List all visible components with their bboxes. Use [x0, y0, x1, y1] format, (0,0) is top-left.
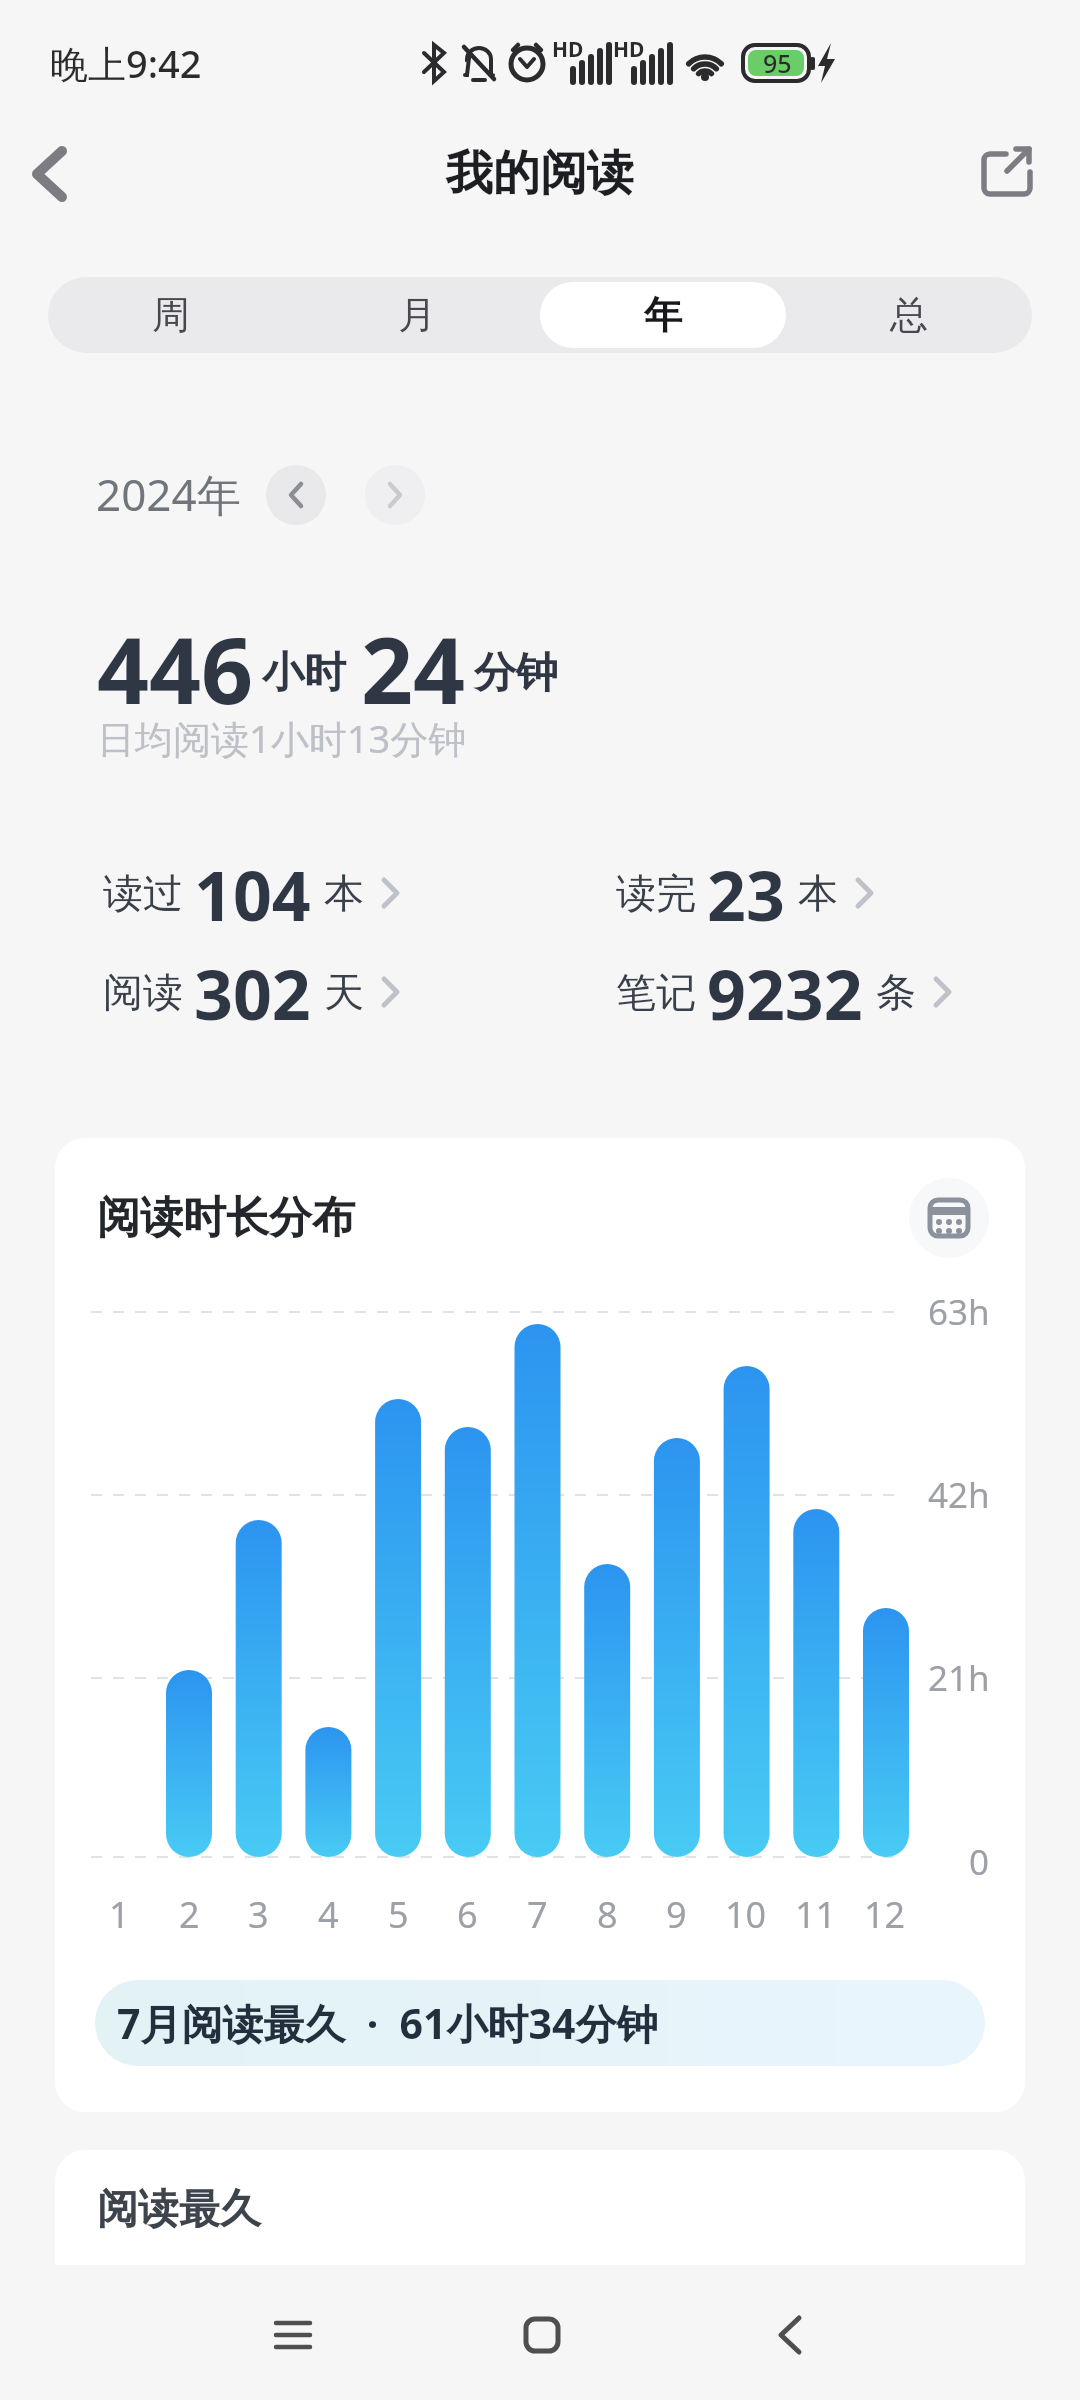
staticText: 7月阅读最久 · 61小时34分钟 [117, 1995, 658, 2051]
staticText: 条 [876, 967, 916, 1017]
button[interactable]: 总 [786, 282, 1032, 348]
staticText: 读过 [103, 868, 183, 918]
button[interactable] [254, 2295, 334, 2375]
button[interactable] [365, 465, 425, 525]
staticText: 1 [109, 1890, 130, 1939]
button[interactable] [750, 2295, 830, 2375]
staticText: 4 [318, 1890, 339, 1939]
staticText: 63h [928, 1288, 990, 1336]
staticText: 本 [324, 868, 364, 918]
staticText: 7 [527, 1890, 548, 1939]
staticText: 10 [725, 1890, 767, 1939]
staticText: 2024年 [96, 464, 241, 524]
staticText: 5 [388, 1890, 409, 1939]
button[interactable] [909, 1178, 989, 1258]
staticText: 23 [707, 848, 785, 938]
staticText: 晚上9:42 [50, 37, 202, 89]
staticText: 我的阅读 [446, 144, 634, 203]
staticText: 阅读时长分布 [97, 1191, 355, 1245]
staticText: 21h [928, 1654, 990, 1702]
button[interactable]: 7月阅读最久 · 61小时34分钟 [95, 1980, 985, 2066]
staticText: 24 [361, 607, 466, 711]
staticText: 302 [194, 947, 311, 1037]
staticText: 42h [928, 1471, 990, 1519]
staticText: 2 [179, 1890, 200, 1939]
staticText: HD [613, 35, 645, 64]
staticText: 日均阅读1小时13分钟 [97, 712, 467, 764]
button[interactable]: 年 [540, 282, 786, 348]
button[interactable]: 阅读 [103, 947, 402, 1037]
staticText: 天 [324, 967, 364, 1017]
staticText: 笔记 [616, 967, 696, 1017]
staticText: HD [552, 35, 584, 64]
button[interactable]: 周 [48, 282, 294, 348]
staticText: 446 [97, 607, 254, 711]
staticText: 月 [398, 291, 436, 339]
staticText: 周 [152, 291, 190, 339]
staticText: 6 [457, 1890, 478, 1939]
staticText: 阅读最久 [97, 2184, 261, 2236]
button[interactable] [980, 144, 1034, 200]
staticText: 9232 [707, 947, 863, 1037]
staticText: 小时 [262, 647, 346, 700]
staticText: 3 [248, 1890, 269, 1939]
button[interactable] [26, 148, 86, 202]
staticText: 104 [194, 848, 311, 938]
button[interactable]: 笔记 [616, 947, 954, 1037]
staticText: 年 [644, 291, 682, 339]
button[interactable] [266, 465, 326, 525]
staticText: 本 [798, 868, 838, 918]
button[interactable]: 读过 [103, 848, 402, 938]
staticText: 12 [864, 1890, 906, 1939]
staticText: 11 [795, 1890, 837, 1939]
button[interactable]: 月 [294, 282, 540, 348]
staticText: 8 [597, 1890, 618, 1939]
staticText: 分钟 [474, 647, 558, 700]
button[interactable] [502, 2295, 582, 2375]
staticText: 95 [763, 46, 792, 80]
staticText: 9 [666, 1890, 687, 1939]
staticText: 阅读 [103, 967, 183, 1017]
staticText: 读完 [616, 868, 696, 918]
staticText: 0 [969, 1838, 990, 1886]
button[interactable]: 读完 [616, 848, 876, 938]
staticText: 总 [890, 291, 928, 339]
